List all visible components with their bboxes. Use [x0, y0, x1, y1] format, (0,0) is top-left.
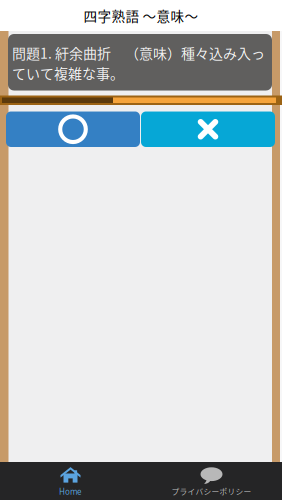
staticText: 問題1. 紆余曲折 （意味）種々込み入っていて複雑な事。 [12, 42, 265, 83]
button[interactable]: プライバシーポリシー [141, 462, 282, 500]
button[interactable]: Batsu — incorrect [141, 111, 275, 147]
button[interactable]: Maru — correct [6, 111, 140, 147]
button[interactable]: Home [0, 462, 141, 500]
staticText: 四字熟語 ～意味～ [83, 6, 198, 25]
staticText: Home [59, 486, 82, 497]
staticText: プライバシーポリシー [171, 486, 251, 497]
